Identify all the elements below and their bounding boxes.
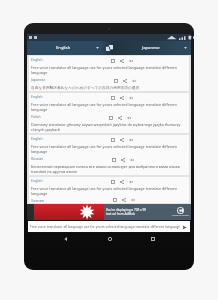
button[interactable]: Copy [109, 94, 116, 101]
button[interactable]: English [29, 93, 189, 133]
button[interactable]: Speak [125, 114, 132, 121]
button[interactable]: Copy [111, 198, 118, 202]
button[interactable]: Send [180, 223, 188, 231]
button[interactable]: Share [116, 114, 123, 121]
button[interactable]: Share [119, 156, 126, 163]
button[interactable]: Share [118, 94, 125, 101]
staticText: Japanese [31, 77, 46, 82]
button[interactable]: Share [118, 136, 125, 143]
button[interactable]: Speak [130, 77, 137, 84]
staticText: Free voice translator all language use f… [30, 224, 180, 229]
button[interactable]: Share [121, 77, 128, 84]
staticText: Vietnam [31, 198, 45, 202]
button[interactable]: English [29, 135, 189, 175]
staticText: English [31, 94, 43, 99]
staticText: English [31, 136, 43, 141]
button[interactable]: Free voice translator all language use f… [28, 221, 190, 232]
button[interactable]: Copy [112, 77, 119, 84]
staticText: Free voice translator all language use f… [31, 65, 187, 75]
staticText: Free voice translator all language use f… [31, 186, 187, 196]
staticText: You're displaying a 728 x 90 [106, 208, 146, 212]
staticText: Japanese [142, 45, 160, 51]
button[interactable]: Share [120, 198, 127, 202]
button[interactable]: Speak [127, 136, 134, 143]
button[interactable]: Copy [109, 57, 116, 64]
staticText: Free voice translator all language use f… [31, 102, 187, 112]
staticText: Бесплатный переводчик голоса все языки и… [31, 164, 187, 174]
button[interactable]: Speak [127, 94, 134, 101]
staticText: English [31, 57, 43, 62]
button[interactable]: Share [118, 57, 125, 64]
button[interactable]: Japanese [115, 41, 191, 55]
button[interactable]: Copy [109, 136, 116, 143]
staticText: 自由な音声翻訳者あなたのためのすべての言語の使用言語の選択 [31, 85, 187, 90]
button[interactable]: Recent apps [147, 233, 158, 244]
staticText: test ad from AdMob [106, 212, 136, 216]
staticText: AdMob by Google [172, 214, 189, 217]
button[interactable]: Speak [127, 178, 134, 185]
button[interactable]: Speak [129, 198, 136, 202]
button[interactable]: English [27, 41, 103, 55]
button[interactable]: English [29, 56, 189, 91]
staticText: Free voice translator all language use f… [31, 144, 187, 154]
button[interactable]: Speak [128, 156, 135, 163]
button[interactable]: Back [60, 233, 71, 244]
button[interactable]: Copy [109, 178, 116, 185]
button[interactable]: Copy [107, 114, 114, 121]
button[interactable]: Share [118, 178, 125, 185]
staticText: English [31, 178, 43, 183]
button[interactable]: Home [104, 233, 115, 244]
staticText: Darmowy translator głosowy używa wszystk… [31, 122, 187, 132]
button[interactable]: Advertisement [27, 204, 191, 220]
staticText: Polish [31, 114, 41, 119]
button[interactable]: Swap languages [103, 42, 115, 54]
button[interactable]: Speak [127, 57, 134, 64]
button[interactable]: Copy [110, 156, 117, 163]
button[interactable]: English [29, 177, 189, 203]
staticText: Russian [31, 156, 44, 161]
staticText: English [56, 45, 71, 51]
